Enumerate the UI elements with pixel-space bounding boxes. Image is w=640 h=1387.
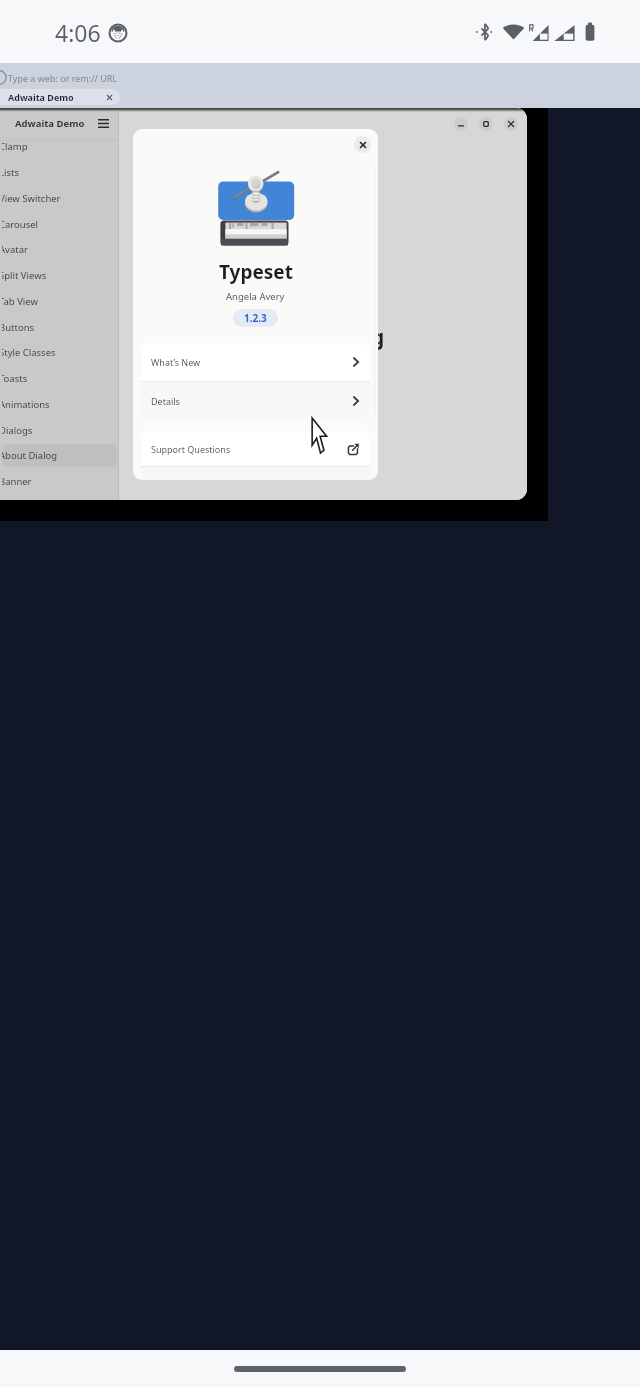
staticText: Lists — [2, 166, 19, 179]
button[interactable]: Avatar — [2, 238, 117, 261]
button[interactable]: Buttons — [2, 316, 117, 339]
staticText: Split Views — [2, 269, 47, 282]
button[interactable]: Tab View — [2, 290, 117, 313]
button[interactable]: Clamp — [2, 135, 117, 158]
staticText: Buttons — [2, 321, 35, 334]
staticText: Style Classes — [2, 346, 56, 359]
staticText: Toasts — [2, 372, 28, 385]
button[interactable]: View Switcher — [2, 187, 117, 210]
staticText: 1.2.3 — [244, 311, 267, 325]
button[interactable]: Split Views — [2, 264, 117, 287]
button[interactable]: Carousel — [2, 213, 117, 236]
staticText: 4:06 — [55, 17, 101, 48]
button[interactable]: Minimise — [454, 117, 468, 131]
staticText: Typeset — [219, 259, 293, 285]
button[interactable]: Banner — [2, 470, 117, 493]
button[interactable]: Close — [504, 117, 518, 131]
staticText: Details — [151, 395, 180, 407]
staticText: Type a web: or rem:// URL — [8, 72, 118, 84]
staticText: Carousel — [2, 218, 39, 231]
staticText: View Switcher — [2, 192, 61, 205]
button[interactable]: 1.2.3 — [233, 309, 278, 327]
staticText: Animations — [2, 398, 50, 411]
button[interactable]: Adwaita Demo — [0, 89, 120, 105]
staticText: g — [371, 323, 385, 352]
staticText: Avatar — [2, 243, 28, 256]
staticText: Clamp — [2, 140, 28, 153]
button[interactable]: Lists — [2, 161, 117, 184]
button[interactable]: About Dialog — [2, 444, 117, 467]
staticText: Angela Avery — [226, 290, 285, 303]
staticText: Adwaita Demo — [8, 91, 74, 103]
staticText: About Dialog — [2, 449, 58, 462]
staticText: What’s New — [151, 356, 201, 368]
button[interactable]: What’s New — [141, 343, 370, 381]
staticText: Banner — [2, 475, 32, 488]
button[interactable]: Style Classes — [2, 341, 117, 364]
button[interactable]: Details — [141, 382, 370, 419]
button[interactable]: Toasts — [2, 367, 117, 390]
button[interactable]: Dialogs — [2, 419, 117, 442]
staticText: Dialogs — [2, 424, 33, 437]
button[interactable]: Main menu — [98, 119, 109, 128]
button[interactable]: Maximise — [479, 117, 493, 131]
button[interactable]: Animations — [2, 393, 117, 416]
button[interactable]: Support Questions — [141, 431, 370, 466]
staticText: Adwaita Demo — [15, 117, 85, 130]
staticText: Support Questions — [151, 443, 231, 455]
button[interactable]: Close dialog — [354, 136, 371, 153]
staticText: Tab View — [2, 295, 38, 308]
